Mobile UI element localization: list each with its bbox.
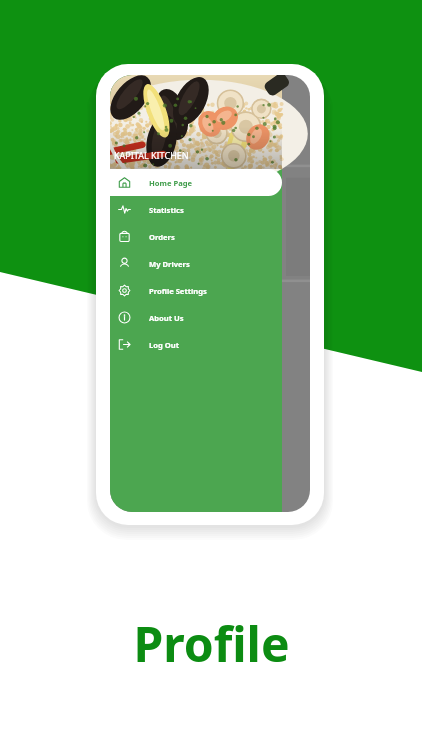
staticText: Profile Settings bbox=[149, 286, 207, 296]
button[interactable]: Home Page bbox=[110, 169, 282, 196]
staticText: Log Out bbox=[149, 340, 180, 350]
staticText: Statistics bbox=[149, 205, 184, 215]
button[interactable]: Profile Settings bbox=[110, 277, 282, 304]
button[interactable]: Orders bbox=[110, 223, 282, 250]
button[interactable]: Statistics bbox=[110, 196, 282, 223]
button[interactable]: Log Out bbox=[110, 331, 282, 358]
staticText: Home Page bbox=[149, 178, 193, 188]
staticText: Profile bbox=[133, 611, 290, 676]
button[interactable]: About Us bbox=[110, 304, 282, 331]
staticText: About Us bbox=[149, 313, 184, 323]
button[interactable]: My Drivers bbox=[110, 250, 282, 277]
staticText: Orders bbox=[149, 232, 175, 242]
staticText: KAPITAL KITCHEN bbox=[114, 149, 189, 161]
staticText: My Drivers bbox=[149, 259, 190, 269]
